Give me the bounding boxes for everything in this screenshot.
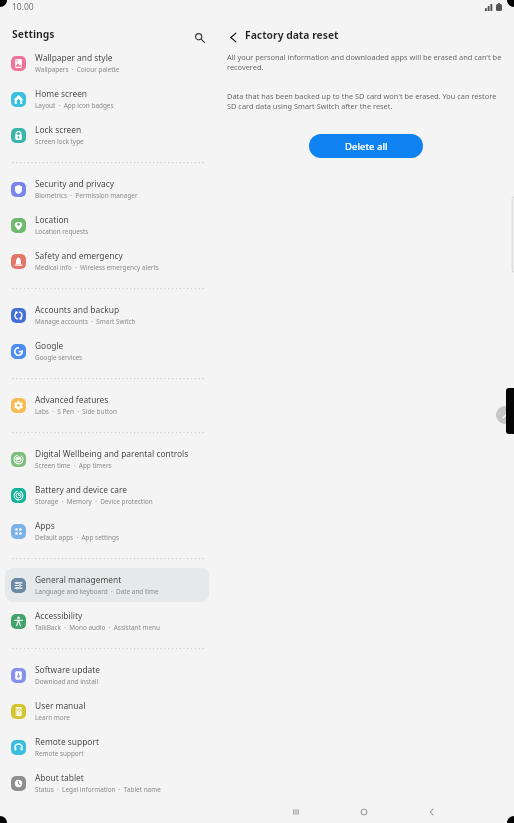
button[interactable]: Back — [223, 27, 243, 47]
staticText: Remote support — [35, 736, 99, 747]
button[interactable]: Location — [5, 208, 209, 242]
staticText: Manage accounts · Smart Switch — [35, 317, 136, 326]
staticText: Google services — [35, 353, 83, 362]
staticText: Location — [35, 214, 69, 225]
staticText: Screen time · App timers — [35, 461, 112, 470]
staticText: Accessibility — [35, 610, 83, 621]
staticText: Lock screen — [35, 124, 82, 135]
button[interactable]: Delete all — [309, 134, 423, 158]
staticText: Layout · App icon badges — [35, 101, 114, 110]
staticText: Home screen — [35, 88, 88, 99]
button[interactable]: Battery and device care — [5, 478, 209, 512]
staticText: Battery and device care — [35, 484, 127, 495]
staticText: Google — [35, 340, 64, 351]
staticText: Digital Wellbeing and parental controls — [35, 448, 189, 459]
staticText: Screen lock type — [35, 137, 84, 146]
button[interactable]: Home screen — [5, 82, 209, 116]
button[interactable]: User manual — [5, 694, 209, 728]
button[interactable]: Security and privacy — [5, 172, 209, 206]
staticText: Factory data reset — [245, 28, 339, 42]
button[interactable]: Recents — [276, 800, 316, 823]
staticText: Apps — [35, 520, 55, 531]
staticText: All your personal information and downlo… — [227, 52, 502, 72]
staticText: Safety and emergency — [35, 250, 123, 261]
staticText: Download and install — [35, 677, 99, 686]
button[interactable]: Digital Wellbeing and parental controls — [5, 442, 209, 476]
button[interactable]: Lock screen — [5, 118, 209, 152]
button[interactable]: Edge panel handle — [496, 406, 514, 424]
button[interactable]: Home — [344, 800, 384, 823]
button[interactable]: Google — [5, 334, 209, 368]
staticText: Medical info · Wireless emergency alerts — [35, 263, 159, 272]
button[interactable]: General management — [5, 568, 209, 602]
staticText: Wallpaper and style — [35, 52, 113, 63]
staticText: Learn more — [35, 713, 70, 722]
staticText: Remote support — [35, 749, 84, 758]
button[interactable]: Software update — [5, 658, 209, 692]
staticText: User manual — [35, 700, 86, 711]
staticText: Settings — [12, 27, 55, 41]
button[interactable]: Remote support — [5, 730, 209, 764]
staticText: Storage · Memory · Device protection — [35, 497, 153, 506]
button[interactable]: Wallpaper and style — [5, 46, 209, 80]
staticText: Data that has been backed up to the SD c… — [227, 91, 502, 111]
staticText: Language and keyboard · Date and time — [35, 587, 159, 596]
button[interactable]: Back — [412, 800, 452, 823]
staticText: Delete all — [345, 140, 388, 153]
staticText: About tablet — [35, 772, 84, 783]
staticText: Wallpapers · Colour palette — [35, 65, 120, 74]
staticText: Status · Legal information · Tablet name — [35, 785, 161, 794]
button[interactable]: Search — [188, 26, 212, 49]
button[interactable]: About tablet — [5, 766, 209, 800]
button[interactable]: Advanced features — [5, 388, 209, 422]
button[interactable]: Accessibility — [5, 604, 209, 638]
staticText: Labs · S Pen · Side button — [35, 407, 117, 416]
staticText: General management — [35, 574, 122, 585]
staticText: 10.00 — [12, 1, 34, 13]
button[interactable]: Apps — [5, 514, 209, 548]
staticText: Biometrics · Permission manager — [35, 191, 138, 200]
staticText: Advanced features — [35, 394, 109, 405]
staticText: Default apps · App settings — [35, 533, 119, 542]
staticText: Location requests — [35, 227, 89, 236]
button[interactable]: Safety and emergency — [5, 244, 209, 278]
staticText: TalkBack · Mono audio · Assistant menu — [35, 623, 160, 632]
staticText: Software update — [35, 664, 101, 675]
staticText: Accounts and backup — [35, 304, 120, 315]
staticText: Security and privacy — [35, 178, 114, 189]
button[interactable]: Accounts and backup — [5, 298, 209, 332]
